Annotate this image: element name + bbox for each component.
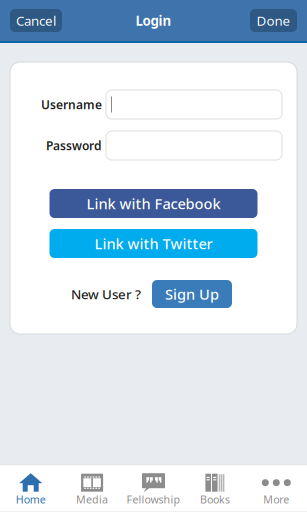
button[interactable]: Cancel [10, 9, 62, 32]
staticText: Link with Facebook [86, 194, 220, 213]
staticText: Books [200, 492, 230, 506]
button[interactable]: Books [184, 465, 246, 511]
staticText: Fellowship [126, 492, 180, 506]
staticText: Login [135, 12, 171, 29]
staticText: More [263, 492, 289, 506]
button[interactable]: Link with Facebook [49, 189, 257, 218]
button[interactable]: Sign Up [152, 280, 232, 308]
button[interactable]: Home [0, 465, 61, 511]
staticText: Username [41, 96, 102, 112]
staticText: New User ? [71, 285, 141, 303]
staticText: Home [16, 492, 46, 506]
button[interactable]: Fellowship [123, 465, 184, 511]
button[interactable]: Done [250, 9, 297, 32]
staticText: Media [76, 492, 108, 506]
staticText: Cancel [16, 12, 56, 29]
button[interactable]: Media [61, 465, 123, 511]
staticText: Sign Up [165, 284, 219, 304]
staticText: Link with Twitter [94, 234, 212, 253]
staticText: Password [46, 137, 102, 153]
button[interactable]: Link with Twitter [49, 229, 257, 258]
staticText: Done [256, 12, 290, 29]
button[interactable]: More [246, 465, 307, 511]
